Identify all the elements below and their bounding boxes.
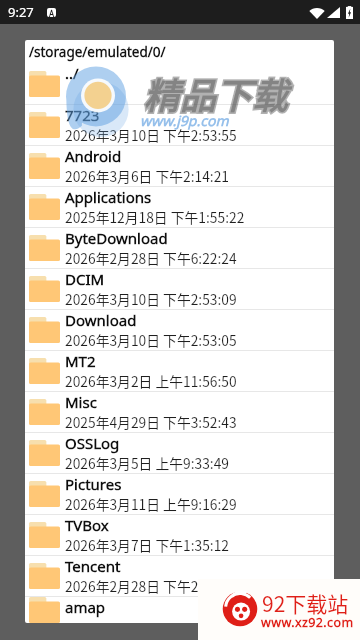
- staticText: www.xz92.com: [261, 614, 354, 631]
- staticText: DCIM: [65, 269, 105, 289]
- button[interactable]: MT2: [25, 350, 334, 391]
- button[interactable]: TVBox: [25, 514, 334, 555]
- staticText: /storage/emulated/0/: [29, 43, 166, 61]
- other: 92 download site logo: [222, 591, 258, 627]
- staticText: OSSLog: [65, 433, 120, 453]
- staticText: Misc: [65, 392, 97, 412]
- staticText: ../: [65, 63, 79, 83]
- staticText: www.j9p.com: [140, 111, 229, 130]
- staticText: Android: [65, 146, 122, 166]
- button[interactable]: DCIM: [25, 268, 334, 309]
- button[interactable]: Android: [25, 145, 334, 186]
- button[interactable]: Tencent: [25, 555, 334, 596]
- button[interactable]: Misc: [25, 391, 334, 432]
- staticText: 2026年3月2日 上午11:56:50: [65, 371, 237, 391]
- staticText: A: [49, 8, 55, 17]
- button[interactable]: Pictures: [25, 473, 334, 514]
- staticText: 7723: [65, 105, 100, 125]
- staticText: Tencent: [65, 556, 121, 576]
- button[interactable]: 7723: [25, 104, 334, 145]
- staticText: 精品下载: [144, 67, 289, 119]
- staticText: 2026年3月5日 上午9:33:49: [65, 453, 229, 473]
- staticText: Applications: [65, 187, 152, 207]
- other: Wi-Fi: [309, 7, 325, 19]
- button[interactable]: ByteDownload: [25, 227, 334, 268]
- staticText: 2026年3月11日 上午9:16:29: [65, 494, 237, 514]
- other: Battery charging: [346, 6, 353, 19]
- staticText: 2026年3月10日 下午2:53:09: [65, 289, 237, 309]
- button[interactable]: Download: [25, 309, 334, 350]
- staticText: Pictures: [65, 474, 122, 494]
- button[interactable]: ../: [25, 63, 334, 104]
- staticText: 2025年12月18日 下午1:55:22: [65, 207, 245, 227]
- staticText: 2026年3月6日 下午2:14:21: [65, 166, 229, 186]
- other: Mobile signal: [327, 7, 340, 18]
- staticText: 2026年3月10日 下午2:53:05: [65, 330, 237, 350]
- staticText: Download: [65, 310, 137, 330]
- staticText: ByteDownload: [65, 228, 168, 248]
- staticText: MT2: [65, 351, 96, 371]
- staticText: 2026年2月28日 下午6:22:24: [65, 248, 237, 268]
- staticText: 9:27: [8, 3, 34, 21]
- button[interactable]: Applications: [25, 186, 334, 227]
- staticText: TVBox: [65, 515, 109, 535]
- staticText: 2026年3月7日 下午1:35:12: [65, 535, 229, 555]
- button[interactable]: OSSLog: [25, 432, 334, 473]
- staticText: 92下载站: [262, 588, 349, 618]
- staticText: 精品下载: [144, 67, 289, 119]
- staticText: 2025年4月29日 下午3:52:43: [65, 412, 237, 432]
- staticText: 2026年3月10日 下午2:53:55: [65, 125, 237, 145]
- button[interactable]: amap: [25, 596, 334, 623]
- staticText: 2026年2月28日 下午2:: [65, 576, 203, 596]
- staticText: amap: [65, 597, 106, 617]
